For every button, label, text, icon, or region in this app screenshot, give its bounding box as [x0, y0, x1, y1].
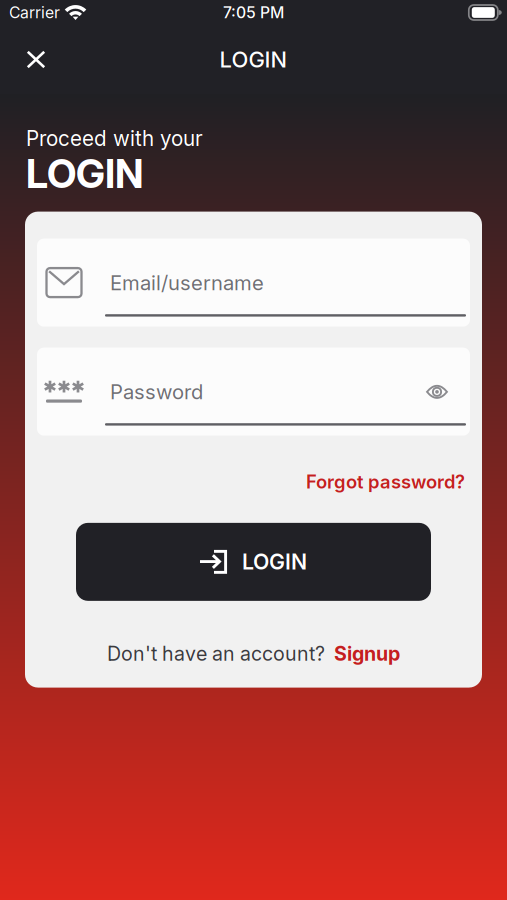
- button[interactable]: Show password: [426, 382, 448, 401]
- staticText: Email/username: [110, 271, 264, 295]
- staticText: 7:05 PM: [223, 3, 284, 22]
- staticText: Password: [110, 380, 203, 404]
- button[interactable]: Don't have an account?: [37, 642, 470, 666]
- button[interactable]: LOGIN: [76, 523, 431, 601]
- staticText: Proceed with your: [26, 126, 203, 151]
- staticText: LOGIN: [26, 150, 144, 198]
- staticText: Don't have an account?: [107, 642, 325, 666]
- staticText: LOGIN: [219, 46, 287, 73]
- staticText: LOGIN: [242, 549, 307, 575]
- button[interactable]: Forgot password?: [37, 471, 470, 493]
- staticText: Signup: [334, 642, 400, 666]
- staticText: Carrier: [9, 3, 60, 22]
- button[interactable]: Close: [12, 35, 60, 83]
- staticText: Forgot password?: [306, 471, 465, 493]
